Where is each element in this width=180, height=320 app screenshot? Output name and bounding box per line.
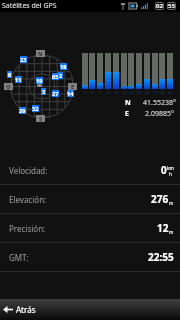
staticText: 0 — [161, 163, 167, 177]
staticText: km — [167, 165, 174, 171]
staticText: 22:55 — [148, 250, 174, 264]
staticText: h — [169, 171, 172, 177]
staticText: 14 — [67, 90, 74, 97]
staticText: E — [125, 109, 129, 119]
button[interactable]: Elevación: — [0, 185, 180, 213]
staticText: 8 — [91, 90, 94, 95]
staticText: 32 — [32, 105, 39, 112]
staticText: 41.55238° — [131, 98, 176, 108]
staticText: E — [71, 83, 75, 90]
staticText: 276 — [151, 192, 169, 206]
staticText: 3 — [42, 88, 46, 95]
staticText: m — [169, 200, 174, 206]
staticText: 20 — [129, 90, 134, 95]
staticText: 27 — [52, 90, 59, 97]
staticText: Precisión: — [9, 223, 46, 234]
staticText: 2 — [59, 72, 63, 79]
button[interactable]: GMT: — [0, 243, 180, 271]
staticText: 23 — [20, 56, 27, 63]
button[interactable]: Velocidad: — [0, 156, 180, 184]
staticText: 2.09885° — [129, 109, 174, 119]
staticText: 02 — [156, 2, 163, 10]
staticText: 20 — [19, 107, 26, 114]
staticText: 32 — [160, 90, 165, 95]
staticText: 55 — [168, 2, 175, 10]
staticText: O — [6, 83, 11, 90]
button[interactable]: Precisión: — [0, 214, 180, 242]
staticText: Satélites del GPS — [2, 1, 57, 11]
staticText: 11 — [15, 76, 22, 83]
staticText: Atrás — [16, 304, 36, 315]
staticText: 26 — [145, 90, 150, 95]
staticText: 14 — [106, 90, 111, 95]
staticText: m — [169, 229, 174, 235]
staticText: 45 — [168, 90, 173, 95]
staticText: 19 — [122, 90, 127, 95]
staticText: N — [38, 50, 43, 57]
staticText: GMT: — [9, 252, 29, 263]
staticText: 11 — [98, 90, 103, 95]
staticText: 12 — [157, 221, 169, 235]
staticText: 18 — [60, 63, 67, 70]
staticText: 3 — [84, 90, 87, 95]
staticText: Elevación: — [9, 194, 47, 205]
other: Atrás — [3, 305, 13, 314]
staticText: 8 — [8, 71, 12, 78]
staticText: 19 — [36, 77, 43, 84]
staticText: 23 — [137, 90, 142, 95]
staticText: 18 — [114, 90, 119, 95]
staticText: N — [125, 98, 131, 108]
button[interactable]: Atrás — [0, 299, 180, 320]
staticText: 27 — [153, 90, 158, 95]
staticText: 65 — [52, 73, 59, 80]
staticText: Velocidad: — [9, 165, 48, 176]
staticText: S — [39, 115, 43, 122]
